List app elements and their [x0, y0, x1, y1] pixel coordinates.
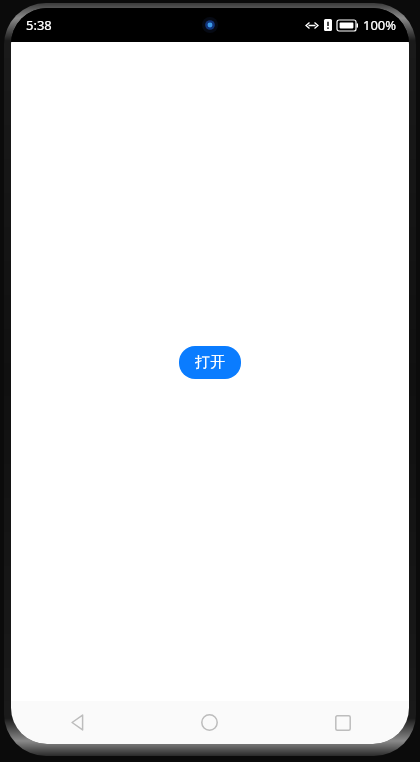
staticText: 打开: [195, 353, 225, 372]
button[interactable]: 打开: [179, 346, 241, 379]
button[interactable]: Recent apps: [276, 701, 409, 744]
staticText: 5:38: [26, 16, 52, 34]
button[interactable]: Back: [11, 701, 143, 744]
staticText: 100%: [363, 16, 397, 34]
button[interactable]: Home: [143, 701, 276, 744]
